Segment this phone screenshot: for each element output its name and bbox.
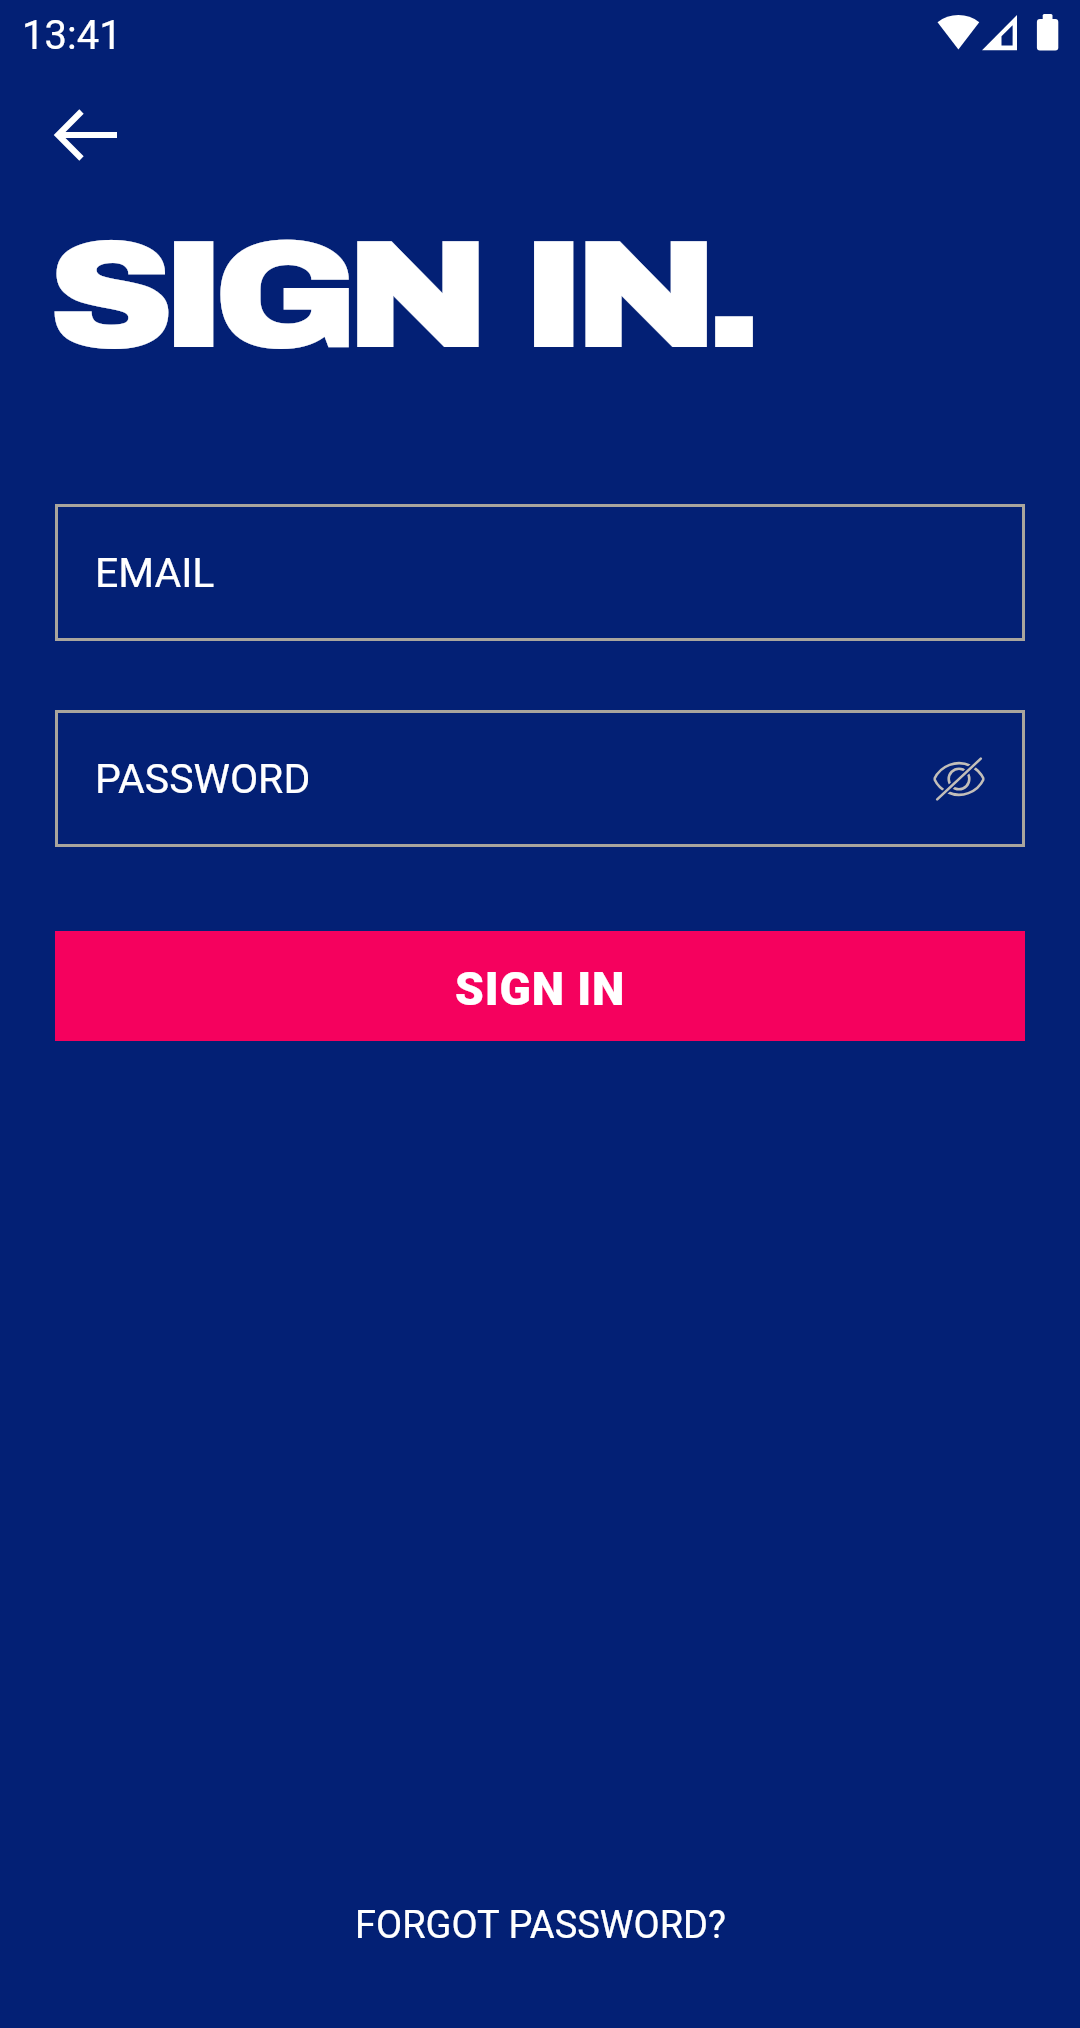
staticText: SIGN IN. [47, 212, 748, 380]
button[interactable]: SIGN IN [55, 931, 1025, 1041]
button[interactable]: EMAIL [55, 504, 1025, 641]
staticText: EMAIL [95, 549, 215, 597]
staticText: 13:41 [22, 12, 122, 59]
button[interactable]: PASSWORD [55, 710, 1025, 847]
button[interactable]: Back [39, 88, 133, 182]
staticText: FORGOT PASSWORD? [355, 1903, 726, 1948]
button[interactable]: Show password [916, 736, 1002, 822]
button[interactable]: FORGOT PASSWORD? [0, 1865, 1080, 1985]
staticText: SIGN IN [455, 962, 626, 1016]
staticText: PASSWORD [95, 755, 311, 803]
